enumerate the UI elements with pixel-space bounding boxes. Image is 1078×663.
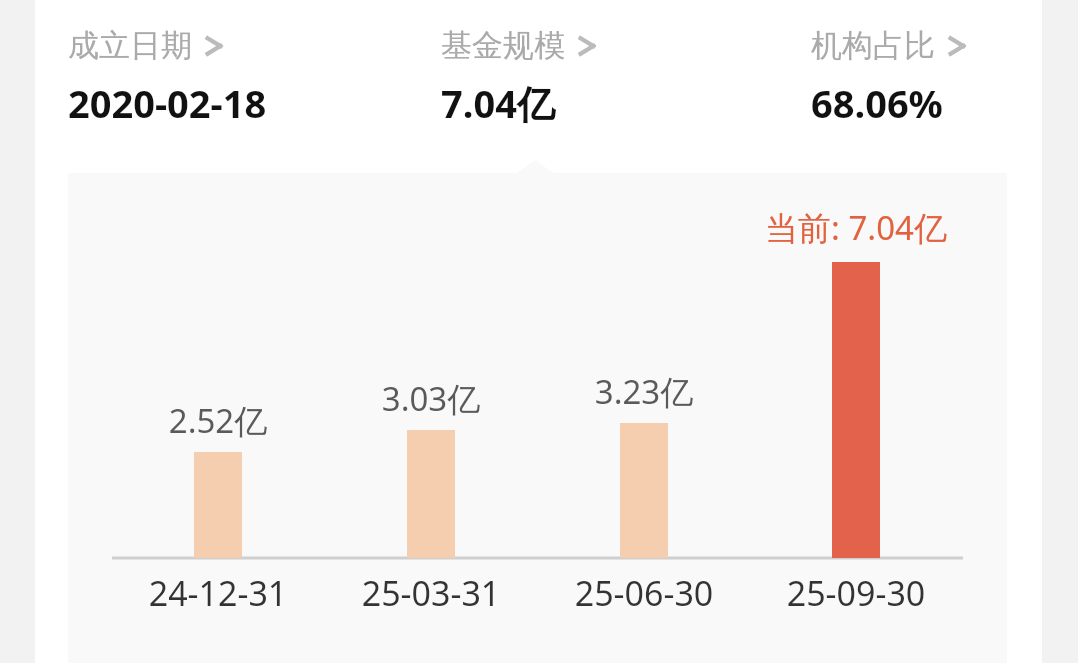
staticText: 基金规模 xyxy=(441,26,565,65)
button[interactable]: 25-09-30 xyxy=(746,570,966,616)
staticText: 2020-02-18 xyxy=(68,77,267,129)
staticText: 3.03亿 xyxy=(341,376,521,421)
staticText: 24-12-31 xyxy=(108,570,328,616)
button[interactable]: 基金规模 xyxy=(439,22,719,133)
staticText: 机构占比 xyxy=(811,26,935,65)
button[interactable]: 25-03-31 xyxy=(321,570,541,616)
staticText: 25-06-30 xyxy=(534,570,754,616)
staticText: 68.06% xyxy=(811,77,943,129)
other: 展开 xyxy=(204,31,224,61)
other: 展开 xyxy=(577,31,597,61)
staticText: 2.52亿 xyxy=(128,398,308,443)
button[interactable]: 机构占比 xyxy=(809,22,1039,133)
staticText: 7.04亿 xyxy=(441,77,555,129)
button[interactable]: 24-12-31 xyxy=(108,570,328,616)
staticText: 3.23亿 xyxy=(554,369,734,414)
button[interactable]: 25-06-30 xyxy=(534,570,754,616)
staticText: 成立日期 xyxy=(68,26,192,65)
other: 展开 xyxy=(947,31,967,61)
staticText: 25-03-31 xyxy=(321,570,541,616)
staticText: 当前: 7.04亿 xyxy=(716,205,996,250)
button[interactable]: 成立日期 xyxy=(66,22,396,133)
staticText: 25-09-30 xyxy=(746,570,966,616)
